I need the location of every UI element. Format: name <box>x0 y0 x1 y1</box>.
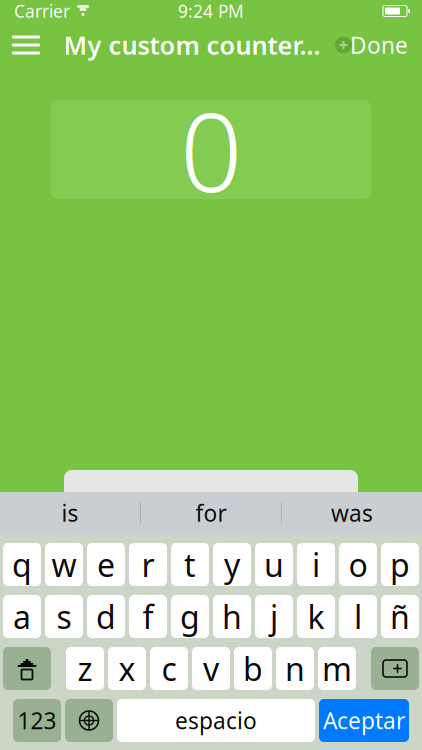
button[interactable]: Done <box>336 23 422 67</box>
staticText: i <box>312 543 320 586</box>
button[interactable]: x <box>108 647 146 690</box>
button[interactable]: n <box>276 647 314 690</box>
button[interactable]: d <box>87 595 125 638</box>
button[interactable]: m <box>318 647 356 690</box>
staticText: 123 <box>17 705 56 735</box>
button[interactable]: q <box>3 543 41 586</box>
button[interactable]: e <box>87 543 125 586</box>
button[interactable]: t <box>171 543 209 586</box>
button[interactable]: 123 <box>13 699 61 742</box>
button[interactable]: 0 <box>50 100 371 199</box>
button[interactable]: for <box>141 492 281 534</box>
staticText: ñ <box>390 595 410 638</box>
staticText: o <box>348 543 367 586</box>
staticText: r <box>141 543 154 586</box>
staticText: j <box>270 595 278 638</box>
staticText: k <box>307 595 324 638</box>
button[interactable]: f <box>129 595 167 638</box>
button[interactable]: Clear title <box>328 28 358 62</box>
button[interactable]: Delete <box>371 647 419 690</box>
staticText: 9:24 PM <box>178 0 244 22</box>
staticText: a <box>13 595 31 638</box>
staticText: for <box>195 498 226 528</box>
button[interactable]: ñ <box>381 595 419 638</box>
button[interactable]: k <box>297 595 335 638</box>
staticText: e <box>97 543 115 586</box>
staticText: m <box>322 647 352 690</box>
button[interactable]: j <box>255 595 293 638</box>
button[interactable]: i <box>297 543 335 586</box>
staticText: u <box>264 543 284 586</box>
staticText: x <box>118 647 135 690</box>
staticText: h <box>222 595 242 638</box>
button[interactable]: w <box>45 543 83 586</box>
staticText: b <box>243 647 263 690</box>
button[interactable]: Next keyboard <box>65 699 113 742</box>
button[interactable]: Menu <box>0 23 52 67</box>
button[interactable]: s <box>45 595 83 638</box>
button[interactable]: y <box>213 543 251 586</box>
button[interactable]: z <box>66 647 104 690</box>
button[interactable]: Shift <box>3 647 51 690</box>
button[interactable]: is <box>0 492 140 534</box>
staticText: l <box>354 595 362 638</box>
button[interactable]: l <box>339 595 377 638</box>
staticText: 0 <box>180 77 242 222</box>
staticText: My custom counter… <box>63 28 320 62</box>
staticText: d <box>96 595 116 638</box>
button[interactable]: h <box>213 595 251 638</box>
button[interactable]: p <box>381 543 419 586</box>
staticText: c <box>161 647 176 690</box>
staticText: g <box>180 595 200 638</box>
button[interactable]: o <box>339 543 377 586</box>
staticText: is <box>61 498 78 528</box>
staticText: Done <box>350 30 408 60</box>
staticText: q <box>12 543 32 586</box>
staticText: z <box>77 647 92 690</box>
staticText: n <box>285 647 305 690</box>
staticText: f <box>142 595 153 638</box>
button[interactable]: a <box>3 595 41 638</box>
button[interactable]: c <box>150 647 188 690</box>
staticText: w <box>51 543 76 586</box>
staticText: y <box>224 543 240 586</box>
button[interactable]: r <box>129 543 167 586</box>
staticText: v <box>203 647 219 690</box>
staticText: Carrier <box>14 0 70 22</box>
button[interactable]: u <box>255 543 293 586</box>
staticText: was <box>331 498 373 528</box>
staticText: Aceptar <box>323 705 405 735</box>
button[interactable]: espacio <box>117 699 315 742</box>
button[interactable]: v <box>192 647 230 690</box>
button[interactable]: g <box>171 595 209 638</box>
staticText: p <box>390 543 410 586</box>
button[interactable]: was <box>282 492 422 534</box>
button[interactable]: b <box>234 647 272 690</box>
staticText: espacio <box>175 705 257 735</box>
staticText: s <box>56 595 71 638</box>
staticText: t <box>184 543 196 586</box>
button[interactable]: Aceptar <box>319 699 409 742</box>
